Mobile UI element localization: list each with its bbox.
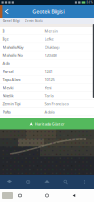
button[interactable]: Back <box>67 189 81 202</box>
button[interactable]: Mevki <box>0 84 94 92</box>
staticText: Lefke <box>44 36 53 42</box>
button[interactable]: Recents <box>13 189 27 202</box>
button[interactable]: Parsel <box>0 67 94 76</box>
button[interactable]: Pafta <box>0 108 94 116</box>
staticText: San Francisco <box>44 101 68 106</box>
staticText: 10125 <box>44 77 54 82</box>
button[interactable]: Search <box>56 175 75 189</box>
staticText: Zemin Tipi <box>2 101 20 106</box>
staticText: Mahalle/Köy <box>2 44 23 50</box>
staticText: Tarla <box>44 93 53 98</box>
staticText: Mahalle No <box>2 52 22 58</box>
staticText: 120348 <box>44 52 56 58</box>
button[interactable]: Locate <box>19 175 38 189</box>
staticText: Ada <box>2 61 9 66</box>
button[interactable]: Haritada Göster <box>0 118 94 130</box>
staticText: 84% <box>86 1 92 4</box>
staticText: Yeni <box>44 85 51 90</box>
staticText: Adala <box>44 109 54 114</box>
button[interactable]: Tapu Alanı <box>0 76 94 84</box>
staticText: 1241 <box>44 69 52 74</box>
staticText: Mersin <box>44 28 57 33</box>
staticText: Nitelik <box>2 93 13 98</box>
staticText: Geotek Bilgisi <box>32 8 64 15</box>
button[interactable]: Measure <box>38 175 56 189</box>
button[interactable]: İlçe <box>0 35 94 43</box>
button[interactable]: Genel Bilgi <box>2 18 21 24</box>
button[interactable]: Ada <box>0 59 94 67</box>
button[interactable]: Home <box>40 189 54 202</box>
staticText: Mevki <box>2 85 13 90</box>
staticText: Genel Bilgi <box>3 19 20 23</box>
staticText: Parsel <box>2 69 13 74</box>
staticText: Haritada Göster <box>35 121 65 127</box>
button[interactable]: More <box>75 175 94 189</box>
staticText: İl <box>2 28 4 33</box>
button[interactable]: Nitelik <box>0 92 94 100</box>
button[interactable]: İl <box>0 27 94 35</box>
button[interactable]: Zemin Etüdü <box>24 18 44 24</box>
button[interactable]: Layers <box>0 175 19 189</box>
staticText: Pafta <box>2 109 10 114</box>
staticText: Zemin Etüdü <box>25 19 43 23</box>
button[interactable]: Mahalle/Köy <box>0 43 94 51</box>
staticText: İlçe <box>2 36 8 42</box>
button[interactable]: Back <box>2 5 11 17</box>
button[interactable]: Zemin Tipi <box>0 100 94 108</box>
button[interactable]: Mahalle No <box>0 51 94 59</box>
staticText: Olukbaşı <box>44 44 59 50</box>
staticText: Tapu Alanı <box>2 77 20 82</box>
